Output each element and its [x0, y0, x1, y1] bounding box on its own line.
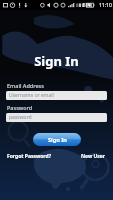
- staticText: Sign In: [0, 52, 113, 70]
- staticText: Sign In: [48, 136, 67, 143]
- button[interactable]: New User: [79, 151, 108, 162]
- button[interactable]: Forgot Password?: [5, 151, 54, 162]
- staticText: 51%: [83, 2, 92, 8]
- staticText: Username or email: [9, 92, 54, 99]
- staticText: Password: [7, 104, 33, 111]
- staticText: Forgot Password?: [7, 153, 52, 160]
- staticText: 11:10: [99, 2, 112, 9]
- staticText: New User: [81, 153, 106, 160]
- staticText: Email Address: [7, 82, 44, 89]
- button[interactable]: password: [6, 113, 107, 122]
- button[interactable]: Username or email: [6, 91, 107, 100]
- staticText: password: [9, 114, 32, 121]
- button[interactable]: Sign In: [33, 133, 81, 146]
